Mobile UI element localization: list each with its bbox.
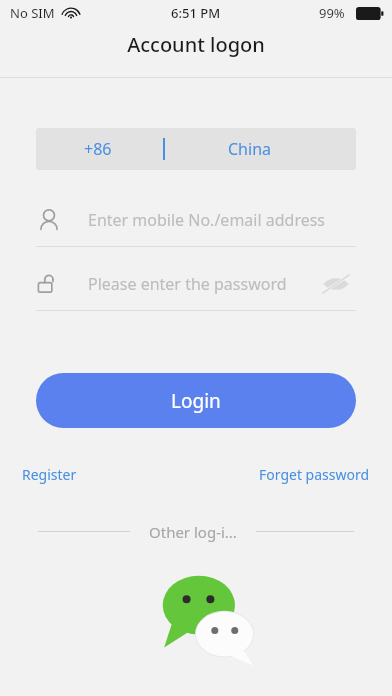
staticText: Account logon — [127, 31, 265, 58]
staticText: Other log-i... — [149, 522, 237, 542]
button[interactable]: +86 — [36, 128, 356, 170]
button[interactable]: Show password — [316, 264, 356, 304]
staticText: No SIM — [10, 4, 55, 22]
button[interactable]: Enter mobile No./email address — [36, 194, 356, 246]
button[interactable]: Sign in with WeChat — [158, 570, 253, 665]
staticText: +86 — [84, 138, 112, 160]
staticText: 6:51 PM — [171, 4, 221, 22]
staticText: Login — [171, 388, 221, 414]
staticText: Forget password — [259, 465, 370, 484]
staticText: Please enter the password — [88, 273, 287, 295]
staticText: 99% — [319, 4, 345, 22]
staticText: China — [228, 138, 271, 160]
button[interactable]: Forget password — [240, 460, 370, 488]
staticText: Register — [22, 465, 77, 484]
button[interactable]: Register — [22, 460, 112, 488]
staticText: Enter mobile No./email address — [88, 209, 326, 231]
button[interactable]: Please enter the password — [36, 258, 356, 310]
button[interactable]: Login — [36, 373, 356, 428]
